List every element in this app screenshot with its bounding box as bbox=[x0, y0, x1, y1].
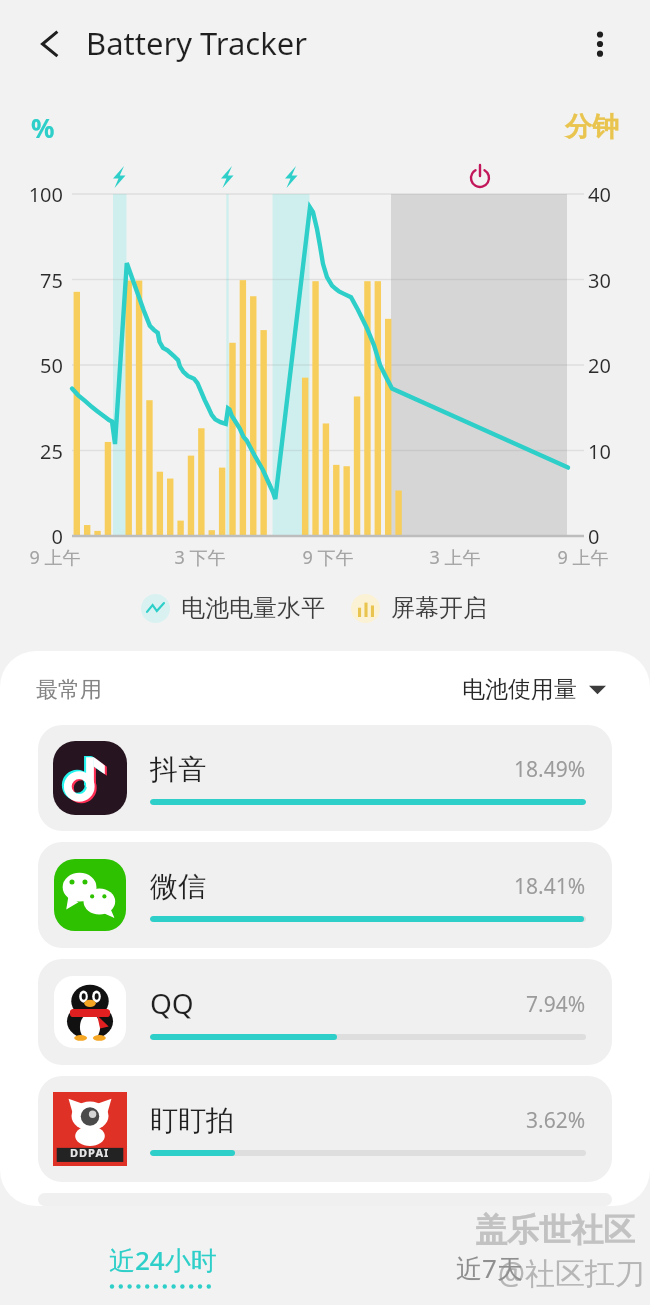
staticText: Battery Tracker bbox=[86, 22, 308, 64]
button[interactable]: 电池使用量 bbox=[462, 675, 606, 704]
staticText: 电池使用量 bbox=[462, 675, 577, 704]
staticText: 18.49% bbox=[514, 755, 586, 784]
button[interactable]: 抖音 bbox=[38, 725, 612, 831]
staticText: 9 上午 bbox=[543, 545, 623, 570]
staticText: 10 bbox=[588, 438, 624, 465]
staticText: 盖乐世社区 bbox=[475, 1210, 635, 1250]
staticText: 3 上午 bbox=[415, 545, 495, 570]
staticText: 3.62% bbox=[526, 1106, 586, 1135]
staticText: DDPAI bbox=[70, 1145, 110, 1160]
staticText: 25 bbox=[22, 438, 63, 465]
staticText: 抖音 bbox=[150, 752, 206, 787]
staticText: 最常用 bbox=[36, 676, 102, 704]
staticText: 分钟 bbox=[565, 110, 619, 144]
staticText: 18.41% bbox=[514, 872, 586, 901]
staticText: @社区扛刀 bbox=[498, 1252, 645, 1293]
button[interactable]: 微信 bbox=[38, 842, 612, 948]
staticText: 0 bbox=[22, 523, 63, 550]
staticText: % bbox=[31, 110, 55, 145]
staticText: 9 下午 bbox=[288, 545, 368, 570]
staticText: 50 bbox=[22, 352, 63, 379]
staticText: 近24小时 bbox=[109, 1242, 217, 1278]
button[interactable]: QQ bbox=[38, 959, 612, 1065]
staticText: 100 bbox=[22, 181, 63, 208]
button[interactable]: 近24小时 bbox=[105, 1242, 221, 1289]
staticText: 40 bbox=[588, 181, 624, 208]
staticText: 9 上午 bbox=[15, 545, 95, 570]
staticText: 7.94% bbox=[526, 990, 586, 1019]
staticText: 微信 bbox=[150, 869, 206, 904]
staticText: QQ bbox=[150, 984, 194, 1022]
button[interactable]: More options bbox=[576, 20, 622, 66]
button[interactable]: 近7天 bbox=[456, 1250, 523, 1286]
staticText: 3 下午 bbox=[160, 545, 240, 570]
staticText: 屏幕开启 bbox=[391, 593, 487, 623]
staticText: 0 bbox=[588, 523, 624, 550]
staticText: 电池电量水平 bbox=[181, 593, 325, 623]
button[interactable]: DDPAI bbox=[38, 1076, 612, 1182]
staticText: 75 bbox=[22, 267, 63, 294]
staticText: 20 bbox=[588, 352, 624, 379]
button[interactable]: Back bbox=[24, 20, 76, 72]
staticText: 盯盯拍 bbox=[150, 1103, 234, 1138]
staticText: 30 bbox=[588, 267, 624, 294]
